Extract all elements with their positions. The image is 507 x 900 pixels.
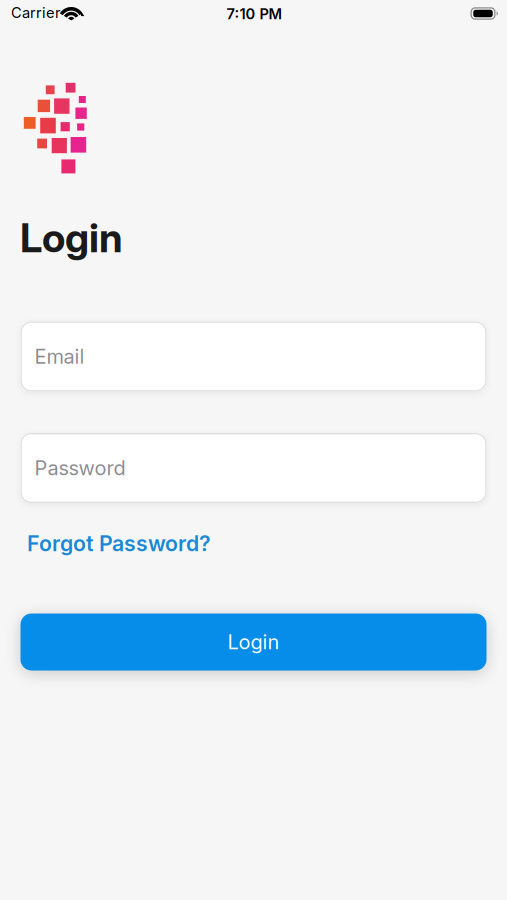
staticText: Login bbox=[227, 630, 279, 654]
staticText: Forgot Password? bbox=[27, 531, 211, 556]
staticText: Carrier bbox=[11, 4, 61, 21]
staticText: Email bbox=[34, 345, 84, 368]
staticText: 7:10 PM bbox=[226, 5, 282, 23]
staticText: Login bbox=[20, 214, 123, 261]
staticText: Password bbox=[34, 456, 125, 480]
button[interactable]: Forgot Password? bbox=[27, 531, 211, 556]
button[interactable]: Login bbox=[20, 613, 486, 670]
button[interactable]: Password bbox=[20, 433, 486, 503]
button[interactable]: Email bbox=[20, 321, 486, 391]
